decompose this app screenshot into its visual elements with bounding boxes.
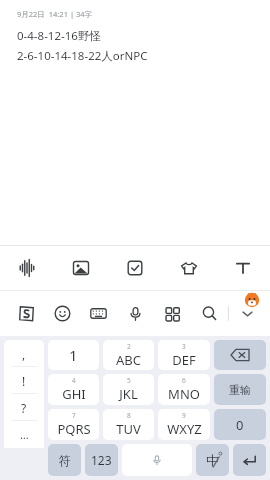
button[interactable]: 4 <box>48 374 99 405</box>
button[interactable]: Voice input <box>117 291 154 336</box>
staticText: 4 <box>72 376 76 385</box>
staticText: ABC <box>116 351 141 369</box>
button[interactable]: 7 <box>48 409 99 440</box>
button[interactable]: … <box>4 421 44 448</box>
staticText: … <box>20 427 29 442</box>
button[interactable]: 9 <box>158 409 210 440</box>
staticText: 7 <box>72 411 76 420</box>
staticText: 8 <box>127 411 131 420</box>
button[interactable]: Assistant <box>243 291 261 309</box>
button[interactable]: Space <box>122 444 192 476</box>
button[interactable]: Hide keyboard <box>229 291 266 336</box>
button[interactable]: Apps <box>154 291 191 336</box>
staticText: 9 <box>182 411 186 420</box>
button[interactable]: Emoji <box>44 291 80 336</box>
staticText: 5 <box>127 376 131 385</box>
staticText: 2-6-10-14-18-22人orNPC <box>17 48 148 64</box>
button[interactable]: Text format <box>216 246 270 290</box>
staticText: 符 <box>59 453 71 468</box>
button[interactable]: 0 <box>214 409 266 440</box>
button[interactable]: 8 <box>103 409 154 440</box>
staticText: 9月22日 14:21 | 34字 <box>17 9 93 19</box>
button[interactable]: 3 <box>158 340 210 370</box>
staticText: 3 <box>182 342 186 351</box>
staticText: , <box>22 346 26 362</box>
staticText: 6 <box>182 376 186 385</box>
button[interactable]: 5 <box>103 374 154 405</box>
button[interactable]: 中 <box>196 444 229 476</box>
staticText: 1 <box>69 345 78 365</box>
button[interactable]: Enter <box>233 444 266 476</box>
staticText: WXYZ <box>167 420 202 438</box>
staticText: ? <box>21 400 27 416</box>
button[interactable]: 2 <box>103 340 154 370</box>
staticText: 0 <box>236 416 244 434</box>
button[interactable]: 1 <box>48 340 99 370</box>
staticText: DEF <box>172 351 196 369</box>
button[interactable]: 6 <box>158 374 210 405</box>
button[interactable]: ! <box>4 367 44 394</box>
staticText: ! <box>22 373 26 389</box>
button[interactable]: Style <box>162 246 216 290</box>
staticText: MNO <box>168 385 200 403</box>
staticText: 0-4-8-12-16野怪 <box>17 28 101 44</box>
staticText: 重输 <box>229 383 251 397</box>
button[interactable]: Search <box>191 291 228 336</box>
button[interactable]: Image <box>54 246 108 290</box>
button[interactable]: Backspace <box>214 340 266 370</box>
staticText: 中 <box>206 452 219 468</box>
button[interactable]: , <box>4 340 44 367</box>
staticText: JKL <box>119 385 138 403</box>
staticText: TUV <box>116 420 141 438</box>
staticText: 2 <box>127 342 131 351</box>
button[interactable]: Keyboard layout <box>80 291 117 336</box>
button[interactable]: Checklist <box>108 246 162 290</box>
button[interactable]: Sogou input <box>8 291 44 336</box>
staticText: PQRS <box>57 420 91 438</box>
button[interactable]: Voice <box>0 246 54 290</box>
button[interactable]: 符 <box>48 444 81 476</box>
button[interactable]: ? <box>4 394 44 421</box>
button[interactable]: 重输 <box>214 374 266 405</box>
staticText: 123 <box>91 452 112 468</box>
button[interactable]: 123 <box>85 444 118 476</box>
staticText: GHI <box>62 385 86 403</box>
